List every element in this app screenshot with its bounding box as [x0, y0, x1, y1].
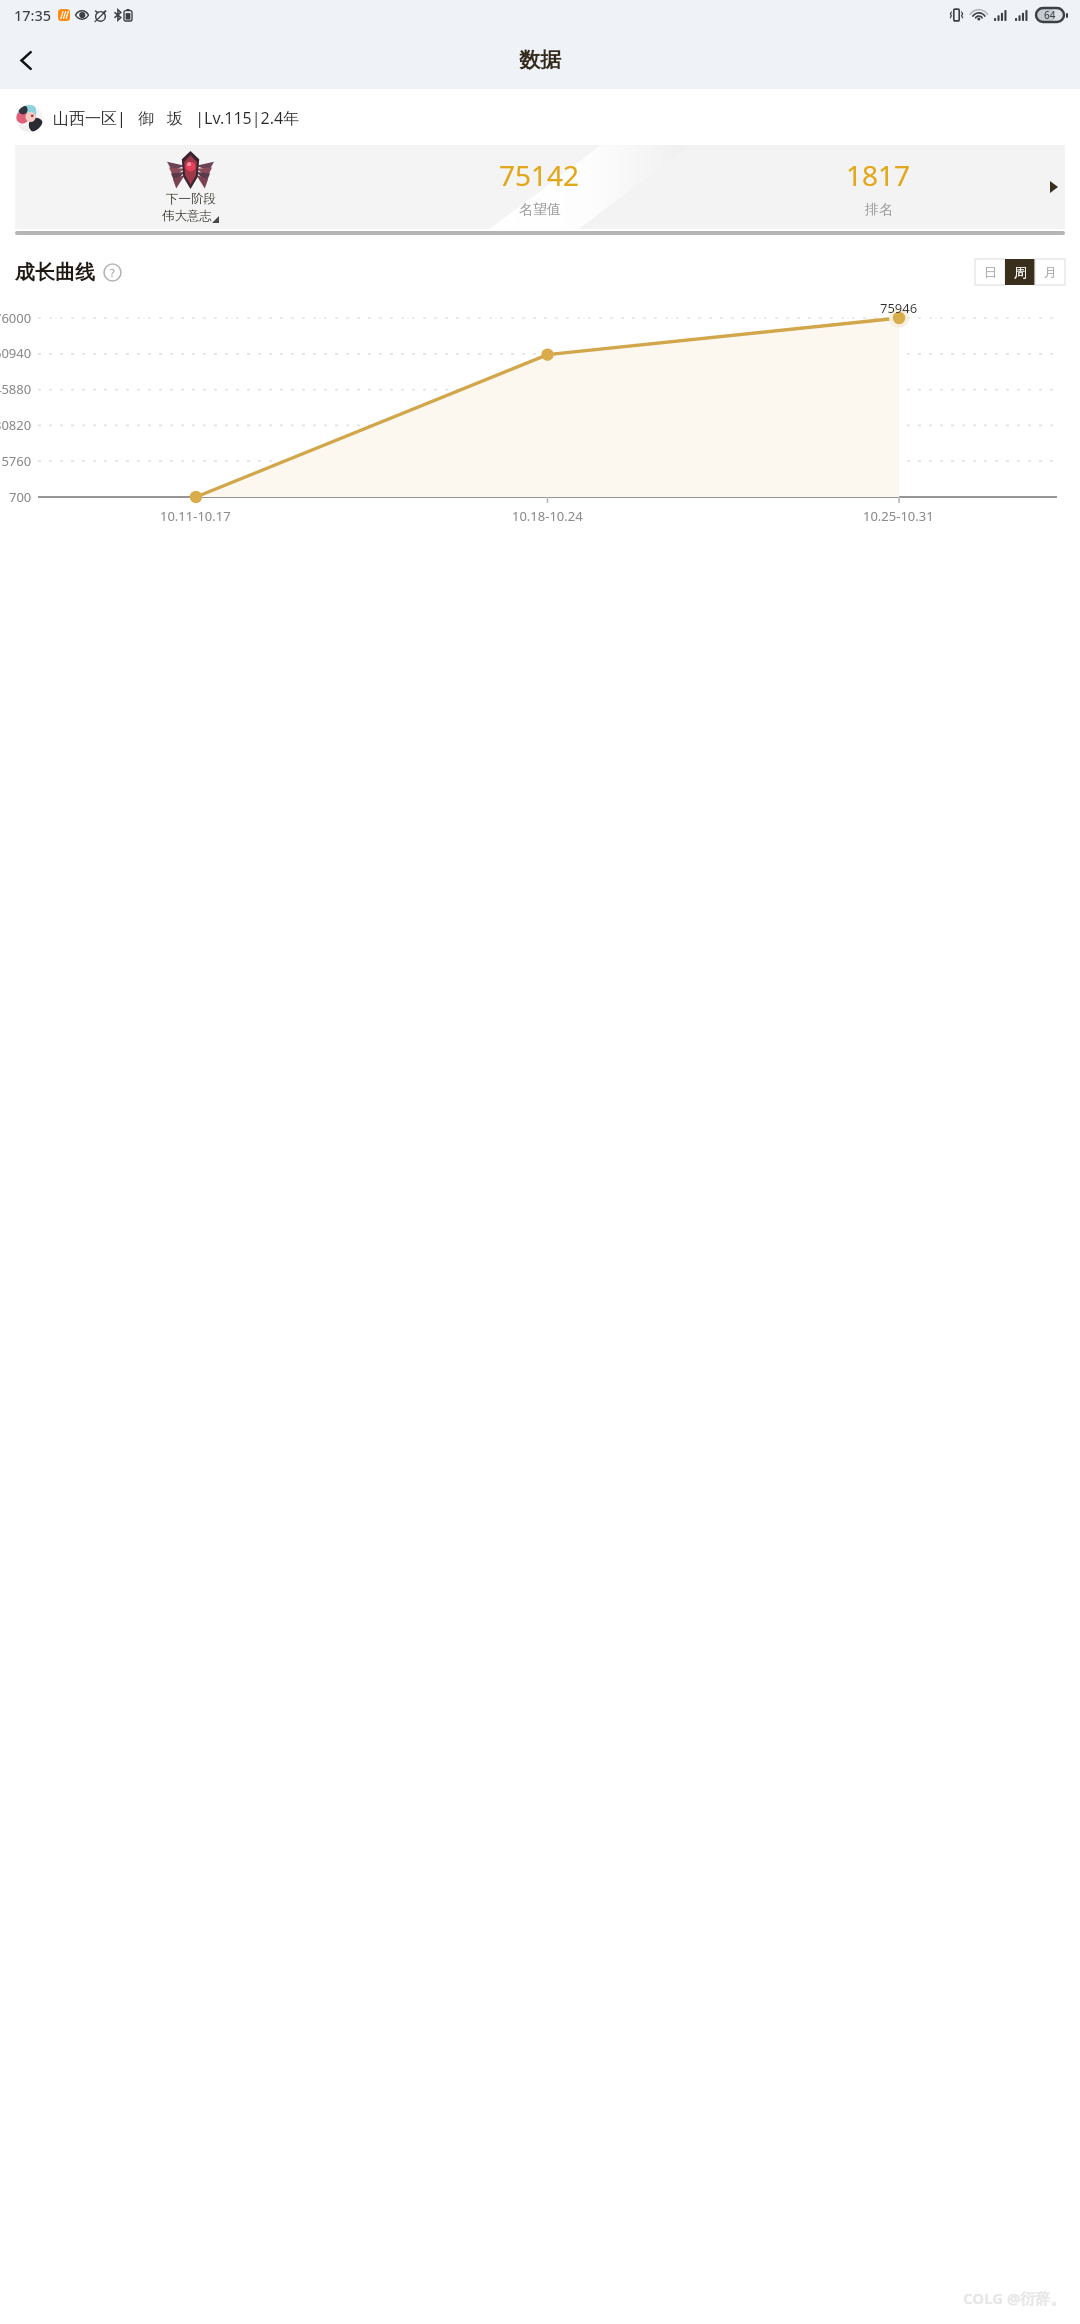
staticText: 下一阶段 [166, 191, 216, 207]
button[interactable]: 周 [1005, 259, 1035, 285]
staticText: 成长曲线 [15, 260, 95, 285]
button[interactable]: 下一阶段 [15, 145, 1065, 229]
staticText: 1817 [846, 156, 911, 194]
staticText: 45880 [0, 380, 32, 398]
staticText: 75946 [880, 299, 918, 317]
staticText: 64 [1044, 8, 1056, 22]
staticText: 数据 [519, 47, 561, 73]
staticText: 周 [1014, 264, 1027, 280]
staticText: 山西一区| 御 坂 |Lv.115|2.4年 [53, 107, 300, 129]
staticText: 17:35 [14, 5, 52, 25]
button[interactable]: 山西一区| 御 坂 |Lv.115|2.4年 [0, 102, 1080, 134]
button[interactable]: Help [103, 263, 122, 282]
staticText: 60940 [0, 344, 32, 362]
staticText: 10.25-10.31 [863, 507, 934, 525]
staticText: 76000 [0, 309, 32, 327]
staticText: 排名 [865, 201, 893, 219]
staticText: COLG @衍辞。 [963, 2288, 1066, 2308]
button[interactable]: Back [3, 37, 49, 83]
staticText: 日 [984, 264, 997, 280]
button[interactable]: 月 [1035, 259, 1065, 285]
staticText: 700 [9, 488, 32, 506]
staticText: 10.11-10.17 [160, 507, 231, 525]
button[interactable]: 日 [975, 259, 1005, 285]
staticText: 名望值 [519, 201, 561, 219]
staticText: 30820 [0, 416, 32, 434]
staticText: 伟大意志 [162, 208, 212, 224]
staticText: 75142 [499, 156, 580, 194]
staticText: 15760 [0, 452, 32, 470]
staticText: 月 [1044, 264, 1057, 280]
staticText: ? [110, 265, 115, 280]
staticText: 10.18-10.24 [512, 507, 583, 525]
